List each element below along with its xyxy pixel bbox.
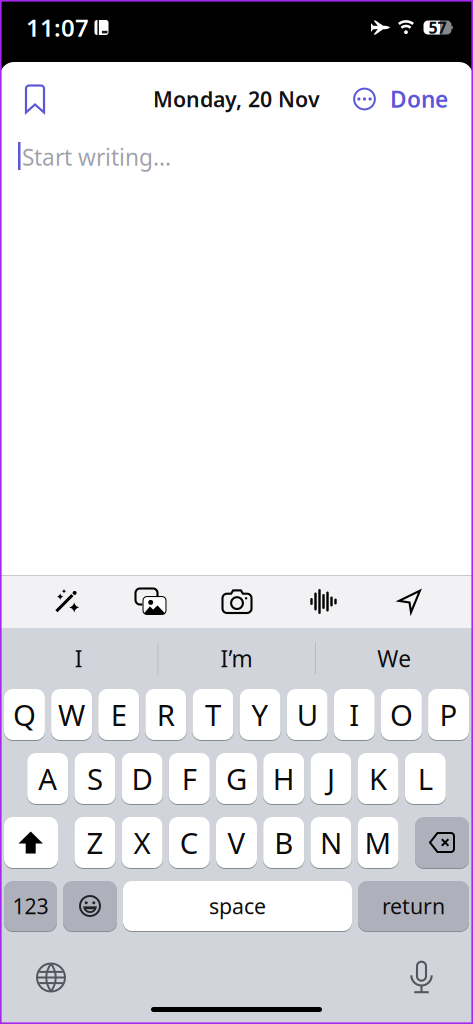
button[interactable]: A [27, 753, 68, 804]
button[interactable]: L [405, 753, 446, 804]
staticText: M [365, 823, 392, 862]
staticText: W [58, 695, 85, 734]
staticText: L [418, 759, 433, 798]
button[interactable]: T [192, 689, 233, 740]
button[interactable]: N [310, 817, 351, 868]
button[interactable]: M [358, 817, 399, 868]
staticText: Q [13, 695, 36, 734]
button[interactable]: U [287, 689, 328, 740]
button[interactable]: Location [380, 575, 440, 627]
staticText: T [205, 695, 221, 734]
button[interactable]: I [0, 643, 158, 673]
button[interactable]: C [169, 817, 210, 868]
button[interactable]: H [263, 753, 304, 804]
button[interactable]: We [315, 643, 473, 673]
button[interactable]: D [122, 753, 163, 804]
button[interactable]: I [334, 689, 375, 740]
staticText: X [134, 823, 151, 862]
button[interactable]: S [74, 753, 115, 804]
staticText: A [38, 759, 57, 798]
button[interactable]: Z [74, 817, 115, 868]
button[interactable]: More [353, 87, 376, 110]
staticText: Done [390, 84, 448, 114]
button[interactable]: Q [4, 689, 45, 740]
staticText: We [377, 643, 411, 673]
button[interactable]: Dictation [411, 961, 432, 993]
staticText: F [182, 759, 197, 798]
staticText: P [439, 695, 457, 734]
button[interactable]: Emoji [63, 881, 117, 931]
button[interactable]: Return [358, 881, 469, 931]
staticText: D [132, 759, 153, 798]
staticText: N [320, 823, 342, 862]
button[interactable]: I’m [158, 643, 315, 673]
button[interactable]: E [98, 689, 139, 740]
staticText: O [390, 695, 413, 734]
staticText: Y [252, 695, 269, 734]
button[interactable]: W [51, 689, 92, 740]
button[interactable]: B [263, 817, 304, 868]
button[interactable]: X [122, 817, 163, 868]
button[interactable]: R [145, 689, 186, 740]
button[interactable]: G [216, 753, 257, 804]
staticText: return [382, 892, 445, 920]
staticText: 57 [428, 17, 446, 38]
staticText: E [111, 695, 127, 734]
staticText: Start writing... [22, 142, 171, 172]
staticText: I’m [220, 643, 252, 673]
button[interactable]: P [428, 689, 469, 740]
button[interactable]: Done [376, 84, 473, 114]
staticText: Z [86, 823, 103, 862]
staticText: K [369, 759, 387, 798]
button[interactable]: Camera [207, 575, 267, 627]
staticText: 11:07 [26, 12, 89, 43]
button[interactable]: O [381, 689, 422, 740]
staticText: S [87, 759, 103, 798]
button[interactable]: Shift [4, 817, 58, 868]
button[interactable]: Numbers [4, 881, 57, 931]
staticText: I [349, 695, 359, 734]
staticText: B [274, 823, 293, 862]
staticText: R [157, 695, 175, 734]
staticText: I [75, 643, 83, 673]
staticText: G [226, 759, 247, 798]
button[interactable]: Y [240, 689, 280, 740]
staticText: V [227, 823, 245, 862]
staticText: space [209, 892, 266, 920]
staticText: Monday, 20 Nov [153, 85, 320, 113]
button[interactable]: K [358, 753, 399, 804]
button[interactable]: V [216, 817, 257, 868]
button[interactable]: Photo library [120, 575, 180, 627]
button[interactable]: Delete [415, 817, 469, 868]
staticText: J [327, 759, 335, 798]
button[interactable]: Bookmark [0, 85, 44, 112]
button[interactable]: Audio recording [293, 575, 353, 627]
button[interactable]: space [123, 881, 352, 931]
button[interactable]: J [310, 753, 351, 804]
staticText: 123 [12, 892, 48, 920]
button[interactable]: F [169, 753, 210, 804]
staticText: C [180, 823, 199, 862]
staticText: U [297, 695, 318, 734]
button[interactable]: Next keyboard [36, 962, 66, 992]
staticText: H [273, 759, 295, 798]
button[interactable]: Magic entry suggestions [34, 575, 94, 627]
